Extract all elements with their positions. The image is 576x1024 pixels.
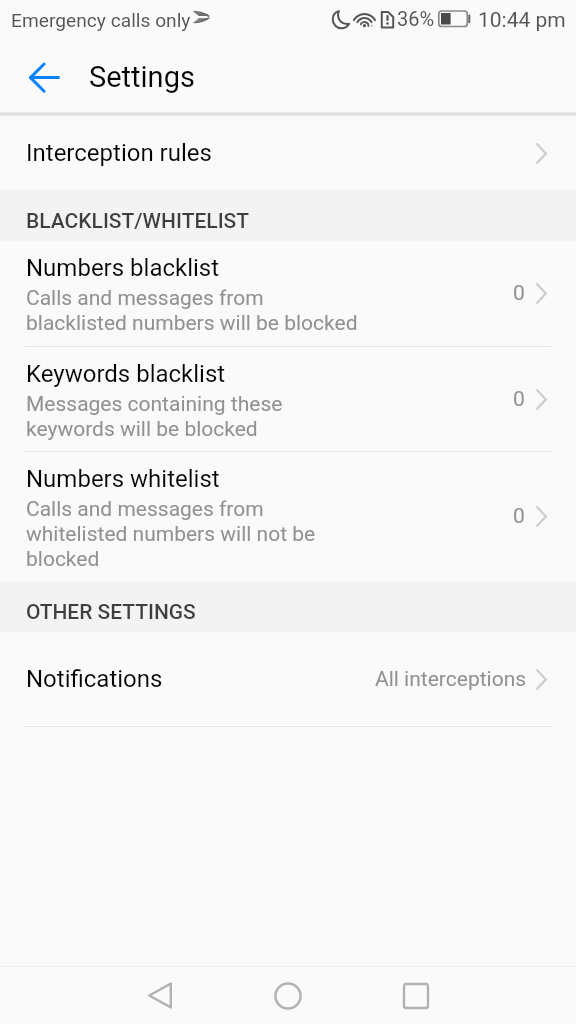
staticText: 36%: [397, 7, 435, 30]
staticText: 0: [513, 281, 525, 306]
staticText: Numbers whitelist: [26, 465, 220, 493]
staticText: BLACKLIST/WHITELIST: [26, 209, 250, 234]
staticText: Calls and messages from whitelisted numb…: [26, 497, 316, 572]
button[interactable]: Numbers whitelist: [0, 452, 576, 581]
staticText: Emergency calls only: [11, 9, 191, 32]
staticText: Notifications: [26, 665, 375, 693]
staticText: Interception rules: [26, 139, 536, 167]
staticText: 0: [513, 387, 525, 412]
button[interactable]: Back: [16, 50, 72, 106]
staticText: 10:44 pm: [478, 8, 566, 33]
staticText: 0: [513, 504, 525, 529]
button[interactable]: Back: [130, 967, 190, 1024]
button[interactable]: Numbers blacklist: [0, 241, 576, 346]
staticText: Keywords blacklist: [26, 360, 226, 388]
button[interactable]: Notifications: [0, 632, 576, 726]
button[interactable]: Home: [258, 967, 318, 1024]
button[interactable]: Recents: [386, 967, 446, 1024]
staticText: Settings: [89, 60, 195, 94]
staticText: Numbers blacklist: [26, 254, 220, 282]
staticText: Calls and messages from blacklisted numb…: [26, 286, 358, 336]
button[interactable]: Keywords blacklist: [0, 347, 576, 451]
button[interactable]: Interception rules: [0, 116, 576, 190]
staticText: Messages containing these keywords will …: [26, 392, 283, 442]
staticText: All interceptions: [375, 667, 527, 692]
staticText: OTHER SETTINGS: [26, 600, 196, 625]
